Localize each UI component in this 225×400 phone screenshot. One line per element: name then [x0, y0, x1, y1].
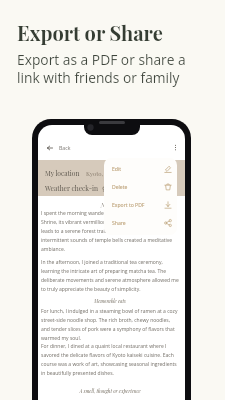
staticText: Edit [112, 166, 122, 173]
staticText: A smell, thought or experience [41, 388, 179, 394]
button[interactable]: Edit [104, 160, 177, 178]
button[interactable]: Back [44, 142, 74, 153]
staticText: Export to PDF [112, 202, 145, 209]
staticText: My location [45, 169, 80, 178]
button[interactable]: Share [104, 214, 177, 232]
staticText: Export or Share [17, 19, 163, 46]
button[interactable]: Delete [104, 178, 177, 196]
staticText: Kyoto, Japan [86, 170, 120, 178]
staticText: I spent the morning wandering through Fu… [41, 210, 179, 253]
staticText: In the afternoon, I joined a traditional… [41, 259, 179, 293]
staticText: Nakanae [41, 202, 179, 208]
staticText: Weather check-in [45, 184, 98, 193]
button[interactable]: More options [169, 141, 181, 153]
staticText: For dinner, I dined at a quaint local re… [41, 343, 179, 377]
staticText: Export as a PDF or share a link with fri… [17, 50, 186, 87]
staticText: Memorable eats [41, 298, 179, 304]
staticText: Back [59, 144, 71, 151]
staticText: Delete [112, 184, 128, 191]
staticText: Share [112, 220, 126, 227]
button[interactable]: Export to PDF [104, 196, 177, 214]
staticText: For lunch, I indulged in a steaming bowl… [41, 308, 179, 342]
